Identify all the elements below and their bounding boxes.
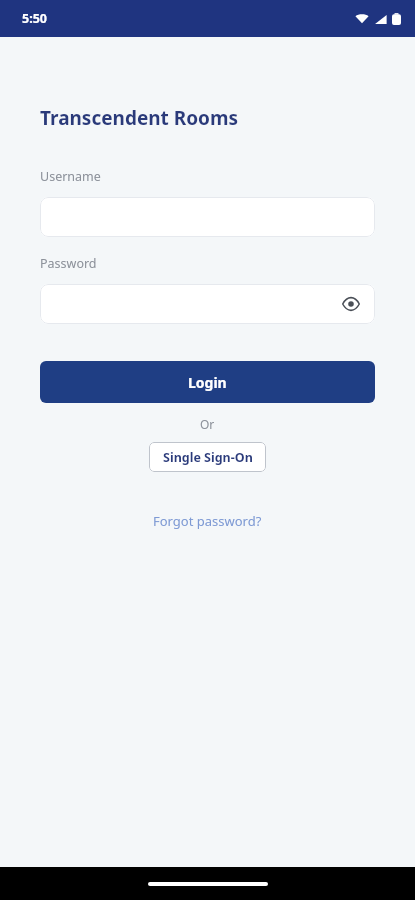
button[interactable]: Show password [40, 284, 375, 324]
button[interactable] [40, 197, 375, 237]
button[interactable]: Forgot password? [145, 508, 270, 534]
staticText: 5:50 [22, 10, 47, 27]
button[interactable]: Single Sign-On [149, 442, 266, 472]
staticText: Password [40, 255, 97, 272]
staticText: Login [188, 373, 227, 392]
staticText: Or [200, 416, 215, 432]
button[interactable]: Login [40, 361, 375, 403]
button[interactable]: Show password [338, 291, 364, 317]
staticText: Transcendent Rooms [40, 105, 239, 131]
staticText: Username [40, 168, 101, 185]
staticText: Single Sign-On [163, 449, 253, 466]
staticText: Forgot password? [153, 512, 262, 530]
